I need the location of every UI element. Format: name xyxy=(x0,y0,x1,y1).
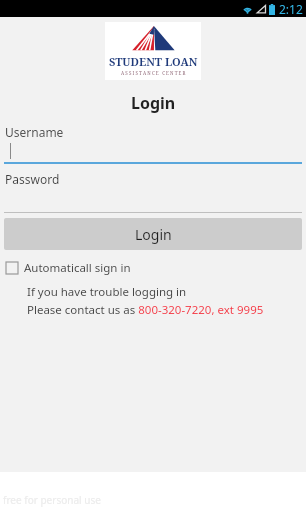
staticText: Username xyxy=(5,124,64,140)
button[interactable]: Login xyxy=(4,218,302,250)
staticText: Password xyxy=(5,171,60,187)
button[interactable]: Automaticall sign in xyxy=(0,258,306,278)
button[interactable] xyxy=(0,187,306,213)
staticText: Login xyxy=(135,225,172,244)
staticText: A S S I S T A N C E C E N T E R xyxy=(121,70,186,76)
staticText: If you have trouble logging in xyxy=(27,284,187,300)
button[interactable] xyxy=(0,140,306,164)
staticText: STUDENT LOAN xyxy=(109,54,198,69)
staticText: Please contact us as 800-320-7220, ext 9… xyxy=(27,302,264,318)
staticText: Login xyxy=(131,92,176,114)
staticText: Automaticall sign in xyxy=(24,260,131,276)
staticText: free for personal use xyxy=(3,493,101,507)
staticText: 2:12 xyxy=(279,1,303,17)
